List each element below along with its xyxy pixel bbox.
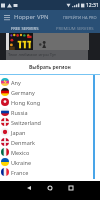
staticText: Denmark <box>11 139 35 146</box>
staticText: Mexico <box>11 149 30 156</box>
button[interactable]: France <box>0 167 100 177</box>
button[interactable]: PREMIUM SERVERS <box>50 24 100 33</box>
staticText: Japan <box>11 129 26 136</box>
button[interactable]: Switzerland <box>0 117 100 127</box>
button[interactable]: Ukraine <box>0 157 100 167</box>
button[interactable]: Hong Kong <box>0 97 100 107</box>
staticText: Any <box>11 79 21 86</box>
button[interactable]: Open navigation menu <box>0 10 14 24</box>
button[interactable]: Any <box>0 77 100 87</box>
staticText: Hopper VPN <box>14 13 49 21</box>
button[interactable]: Germany <box>0 87 100 97</box>
button[interactable]: Mexico <box>0 147 100 157</box>
staticText: Germany <box>11 89 35 96</box>
staticText: Switzerland <box>11 119 41 126</box>
staticText: FREE SERVERS <box>11 26 39 32</box>
staticText: ПЕРЕЙТИ НА PRO <box>63 15 97 20</box>
button[interactable]: Russia <box>0 107 100 117</box>
staticText: Выбрать регион <box>29 64 71 71</box>
button[interactable]: Back <box>22 181 36 195</box>
staticText: Ukraine <box>11 159 32 166</box>
staticText: France <box>11 169 29 176</box>
button[interactable]: Denmark <box>0 137 100 147</box>
staticText: Russia <box>11 109 28 116</box>
button[interactable]: FREE SERVERS <box>0 24 50 33</box>
button[interactable]: ПЕРЕЙТИ НА PRO <box>60 15 100 20</box>
button[interactable]: Recent apps <box>64 181 78 195</box>
staticText: PREMIUM SERVERS <box>56 26 94 32</box>
button[interactable]: Home <box>43 181 57 195</box>
staticText: Твое любимое игры Тут <box>8 52 57 58</box>
staticText: 12:31 <box>86 2 99 9</box>
staticText: Hong Kong <box>11 99 41 106</box>
button[interactable]: Japan <box>0 127 100 137</box>
